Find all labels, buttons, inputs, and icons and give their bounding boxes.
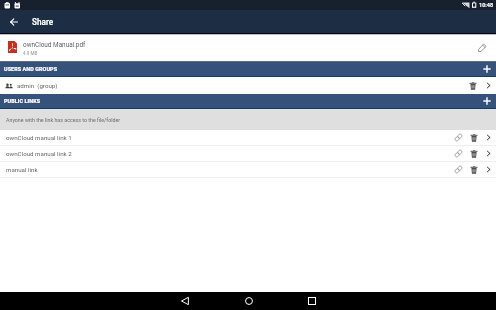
button[interactable]: Delete public link xyxy=(466,146,481,161)
button[interactable]: Link options xyxy=(481,130,496,145)
button[interactable]: ownCloud manual link 2 xyxy=(0,146,496,161)
staticText: admin (group) xyxy=(17,82,58,89)
button[interactable]: Get link xyxy=(451,130,466,145)
button[interactable]: Rename file xyxy=(470,35,494,61)
button[interactable]: Get link xyxy=(451,162,466,177)
staticText: 4.9 MB xyxy=(23,51,38,56)
staticText: PUBLIC LINKS xyxy=(4,98,41,104)
button[interactable]: Get link xyxy=(451,146,466,161)
button[interactable]: admin (group) xyxy=(0,77,496,94)
button[interactable]: Recent apps xyxy=(292,293,332,309)
button[interactable]: Link options xyxy=(481,162,496,177)
staticText: ownCloud manual link 2 xyxy=(6,150,72,157)
staticText: manual link xyxy=(6,166,38,173)
button[interactable]: manual link xyxy=(0,162,496,177)
staticText: USERS AND GROUPS xyxy=(4,66,58,72)
staticText: ownCloud manual link 1 xyxy=(6,134,72,141)
button[interactable]: Add USERS AND GROUPS xyxy=(478,62,496,76)
button[interactable]: Delete public link xyxy=(466,162,481,177)
button[interactable]: Unshare with admin xyxy=(464,77,481,94)
staticText: Anyone with the link has access to the f… xyxy=(6,117,121,123)
button[interactable]: Back xyxy=(165,293,205,309)
staticText: ownCloud Manual.pdf xyxy=(23,41,86,49)
button[interactable]: Home xyxy=(229,293,269,309)
staticText: Share xyxy=(32,17,54,27)
button[interactable]: Delete public link xyxy=(466,130,481,145)
button[interactable]: Sharing permissions xyxy=(481,77,496,94)
button[interactable]: ownCloud manual link 1 xyxy=(0,130,496,145)
staticText: 10:48 xyxy=(479,2,494,9)
button[interactable]: Navigate up xyxy=(0,10,28,33)
button[interactable]: ownCloud Manual.pdf xyxy=(0,35,496,61)
button[interactable]: Add PUBLIC LINKS xyxy=(478,94,496,108)
button[interactable]: Link options xyxy=(481,146,496,161)
